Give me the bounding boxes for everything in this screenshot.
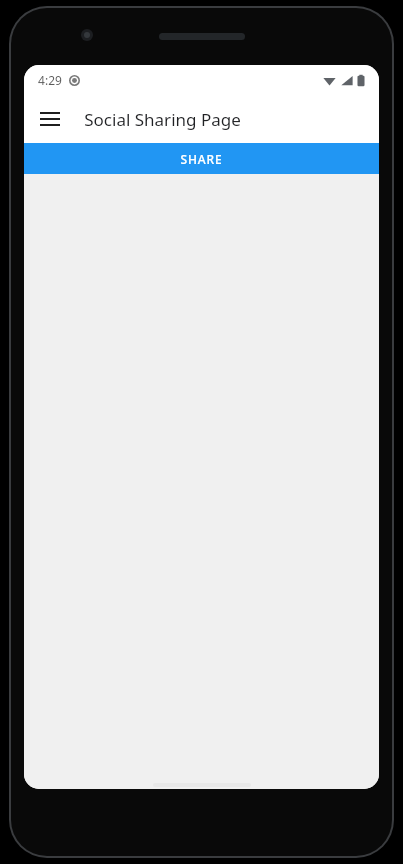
staticText: Social Sharing Page xyxy=(84,108,241,131)
button[interactable]: Open navigation menu xyxy=(30,99,70,139)
button[interactable]: SHARE xyxy=(24,143,379,174)
staticText: 4:29 xyxy=(38,72,62,88)
staticText: SHARE xyxy=(180,151,223,167)
